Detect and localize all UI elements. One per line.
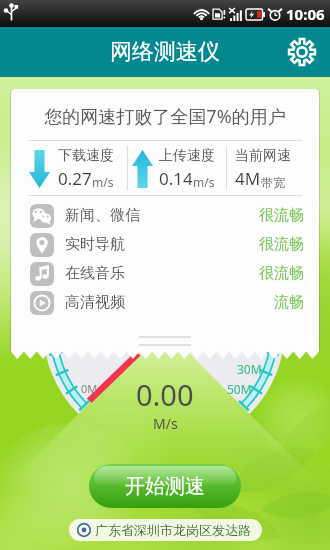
staticText: 很流畅 bbox=[259, 206, 304, 225]
staticText: 很流畅 bbox=[259, 264, 304, 283]
staticText: 很流畅 bbox=[259, 235, 304, 254]
button[interactable]: 广东省深圳市龙岗区发达路 bbox=[69, 519, 262, 541]
staticText: 0.00 bbox=[136, 375, 194, 414]
button[interactable]: 新闻、微信 bbox=[11, 201, 319, 230]
staticText: 高清视频 bbox=[65, 293, 125, 312]
staticText: 50M bbox=[227, 381, 252, 397]
staticText: 下载速度 bbox=[58, 147, 114, 165]
button[interactable]: Settings bbox=[284, 34, 320, 70]
staticText: 0.27 bbox=[58, 167, 92, 190]
staticText: 0M bbox=[81, 381, 98, 396]
staticText: 新闻、微信 bbox=[65, 206, 140, 225]
staticText: m/s bbox=[193, 174, 215, 190]
staticText: 开始测速 bbox=[125, 474, 205, 499]
staticText: 上传速度 bbox=[159, 147, 215, 165]
staticText: 实时导航 bbox=[65, 235, 125, 254]
staticText: m/s bbox=[92, 174, 114, 190]
staticText: M/s bbox=[153, 414, 178, 433]
staticText: 4M bbox=[235, 167, 261, 190]
staticText: 带宽 bbox=[261, 175, 285, 190]
staticText: 30M bbox=[237, 361, 262, 377]
staticText: 您的网速打败了全国7%的用户 bbox=[11, 104, 319, 129]
button[interactable]: 实时导航 bbox=[11, 230, 319, 259]
staticText: 0.14 bbox=[159, 167, 193, 190]
staticText: 在线音乐 bbox=[65, 264, 125, 283]
staticText: 当前网速 bbox=[235, 147, 291, 165]
staticText: 广东省深圳市龙岗区发达路 bbox=[95, 522, 251, 538]
staticText: 10:06 bbox=[286, 4, 325, 24]
button[interactable]: 在线音乐 bbox=[11, 259, 319, 288]
staticText: 网络测速仪 bbox=[110, 38, 220, 66]
button[interactable]: 开始测速 bbox=[89, 464, 241, 508]
button[interactable]: 高清视频 bbox=[11, 288, 319, 317]
staticText: 流畅 bbox=[274, 293, 304, 312]
